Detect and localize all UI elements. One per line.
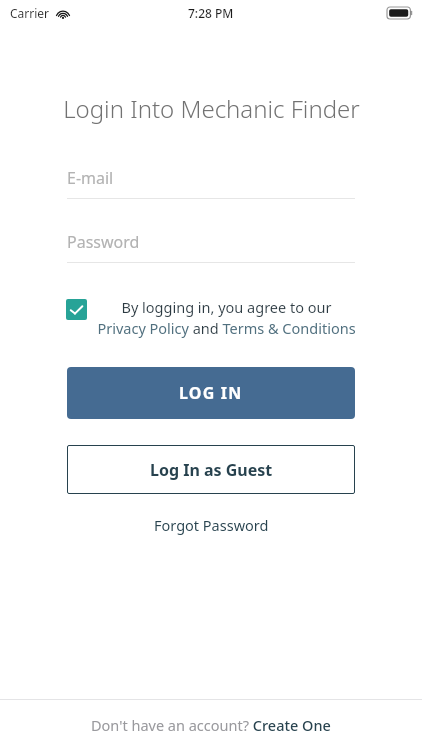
staticText: 7:28 PM: [188, 5, 234, 21]
button[interactable]: Don't have an account? Create One: [91, 715, 331, 735]
button[interactable]: E-mail: [67, 167, 355, 199]
staticText: LOG IN: [179, 382, 243, 404]
button[interactable]: Log In as Guest: [67, 445, 355, 494]
staticText: Don't have an account? Create One: [91, 715, 331, 735]
button[interactable]: Password: [67, 231, 355, 263]
button[interactable]: Forgot Password: [144, 510, 279, 540]
staticText: Log In as Guest: [150, 459, 273, 481]
button[interactable]: LOG IN: [67, 367, 355, 419]
staticText: Password: [67, 231, 140, 253]
staticText: Forgot Password: [154, 515, 269, 535]
button[interactable]: By logging in, you agree to our Privacy …: [66, 297, 356, 339]
staticText: E-mail: [67, 167, 114, 189]
staticText: Carrier: [10, 5, 50, 21]
staticText: Login Into Mechanic Finder: [63, 92, 360, 125]
staticText: By logging in, you agree to our Privacy …: [97, 297, 356, 339]
